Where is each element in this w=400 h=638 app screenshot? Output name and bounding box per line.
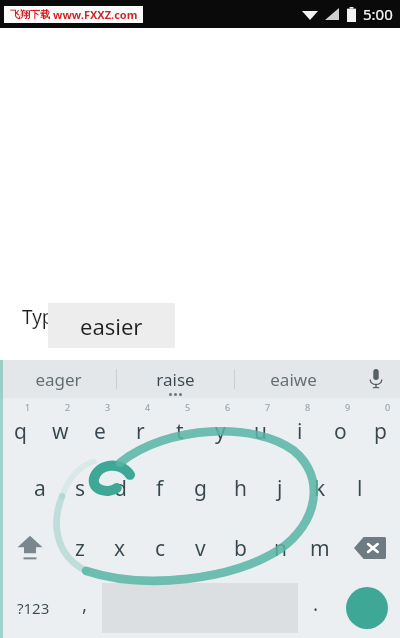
staticText: 9 <box>345 401 351 413</box>
staticText: p <box>374 417 387 446</box>
staticText: 5 <box>185 401 191 413</box>
button[interactable]: eager <box>0 360 116 398</box>
staticText: i <box>297 417 303 446</box>
staticText: 1 <box>25 401 31 413</box>
staticText: 3 <box>105 401 111 413</box>
staticText: easier <box>80 311 143 341</box>
button[interactable]: h <box>220 458 260 518</box>
staticText: c <box>155 534 166 563</box>
staticText: 7 <box>265 401 271 413</box>
button[interactable]: 8 <box>280 398 320 458</box>
staticText: 8 <box>305 401 311 413</box>
staticText: eaiwe <box>270 368 317 391</box>
button[interactable]: g <box>180 458 220 518</box>
staticText: 飞翔下载 <box>10 8 50 21</box>
staticText: www.FXXZ.com <box>53 7 138 22</box>
button[interactable]: s <box>60 458 100 518</box>
button[interactable]: Space <box>102 583 298 633</box>
button[interactable]: 5 <box>160 398 200 458</box>
button[interactable]: 4 <box>120 398 160 458</box>
button[interactable]: d <box>100 458 140 518</box>
staticText: z <box>75 534 85 563</box>
staticText: t <box>176 417 184 446</box>
staticText: 2 <box>65 401 71 413</box>
button[interactable]: 0 <box>360 398 400 458</box>
staticText: v <box>195 534 206 563</box>
staticText: d <box>114 474 127 503</box>
staticText: u <box>254 417 267 446</box>
staticText: g <box>194 474 207 503</box>
staticText: 4 <box>145 401 151 413</box>
button[interactable]: 2 <box>40 398 80 458</box>
button[interactable]: x <box>100 518 140 578</box>
staticText: o <box>334 417 347 446</box>
staticText: r <box>136 417 145 446</box>
button[interactable]: eaiwe <box>235 360 352 398</box>
button[interactable]: 1 <box>0 398 40 458</box>
staticText: y <box>215 417 226 446</box>
button[interactable]: 9 <box>320 398 360 458</box>
staticText: l <box>357 474 363 503</box>
button[interactable]: v <box>180 518 220 578</box>
staticText: e <box>94 417 106 446</box>
button[interactable]: 6 <box>200 398 240 458</box>
button[interactable]: raise <box>117 360 234 398</box>
staticText: 6 <box>225 401 231 413</box>
staticText: w <box>52 417 69 446</box>
staticText: k <box>314 474 326 503</box>
staticText: a <box>34 474 46 503</box>
staticText: j <box>277 474 283 503</box>
button[interactable]: a <box>20 458 60 518</box>
button[interactable]: Enter <box>333 578 400 638</box>
button[interactable]: , <box>67 578 102 638</box>
staticText: . <box>313 591 319 617</box>
staticText: x <box>114 534 126 563</box>
staticText: Typing is <box>22 304 101 330</box>
staticText: n <box>274 534 287 563</box>
staticText: , <box>82 591 88 617</box>
staticText: s <box>75 474 86 503</box>
button[interactable]: n <box>260 518 300 578</box>
button[interactable]: . <box>298 578 333 638</box>
button[interactable]: 7 <box>240 398 280 458</box>
button[interactable]: f <box>140 458 180 518</box>
staticText: m <box>310 534 330 563</box>
button[interactable]: Voice input <box>352 360 400 398</box>
button[interactable]: z <box>60 518 100 578</box>
button[interactable]: j <box>260 458 300 518</box>
staticText: f <box>156 474 164 503</box>
button[interactable]: m <box>300 518 340 578</box>
button[interactable]: ?123 <box>0 578 67 638</box>
staticText: h <box>234 474 247 503</box>
staticText: b <box>234 534 247 563</box>
button[interactable]: b <box>220 518 260 578</box>
button[interactable]: k <box>300 458 340 518</box>
staticText: q <box>14 417 27 446</box>
staticText: ?123 <box>17 598 50 618</box>
staticText: 0 <box>385 401 391 413</box>
button[interactable]: l <box>340 458 380 518</box>
button[interactable]: 3 <box>80 398 120 458</box>
staticText: 5:00 <box>363 4 393 24</box>
staticText: raise <box>156 368 195 391</box>
staticText: eager <box>35 368 82 391</box>
button[interactable]: c <box>140 518 180 578</box>
button[interactable]: Backspace <box>340 518 400 578</box>
button[interactable]: Shift <box>0 518 60 578</box>
